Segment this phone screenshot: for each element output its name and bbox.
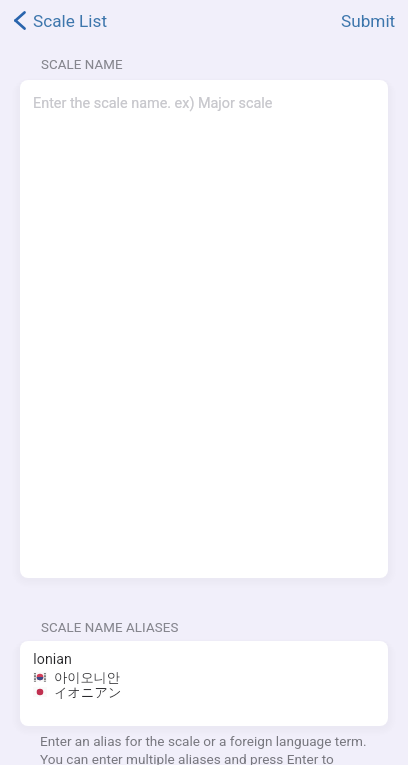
button[interactable]: Back	[7, 7, 118, 35]
staticText: You can enter multiple aliases and press…	[40, 751, 334, 765]
other: Korean	[33, 672, 47, 682]
button[interactable]: Korean	[33, 669, 120, 684]
staticText: Scale List	[33, 11, 108, 31]
button[interactable]: Submit	[325, 7, 408, 35]
button[interactable]: Enter the scale name. ex) Major scale	[20, 80, 388, 578]
staticText: SCALE NAME	[41, 57, 123, 73]
staticText: 아이오니안	[54, 669, 120, 684]
staticText: イオニアン	[54, 684, 122, 699]
staticText: Ionian	[33, 651, 72, 668]
button[interactable]: Ionian	[20, 641, 388, 726]
other: Back	[14, 11, 26, 30]
staticText: Submit	[341, 11, 396, 31]
staticText: Enter the scale name. ex) Major scale	[33, 95, 273, 112]
staticText: Enter an alias for the scale or a foreig…	[40, 733, 367, 749]
other: Japanese	[33, 687, 47, 697]
button[interactable]: Japanese	[33, 684, 122, 699]
staticText: SCALE NAME ALIASES	[41, 620, 179, 636]
